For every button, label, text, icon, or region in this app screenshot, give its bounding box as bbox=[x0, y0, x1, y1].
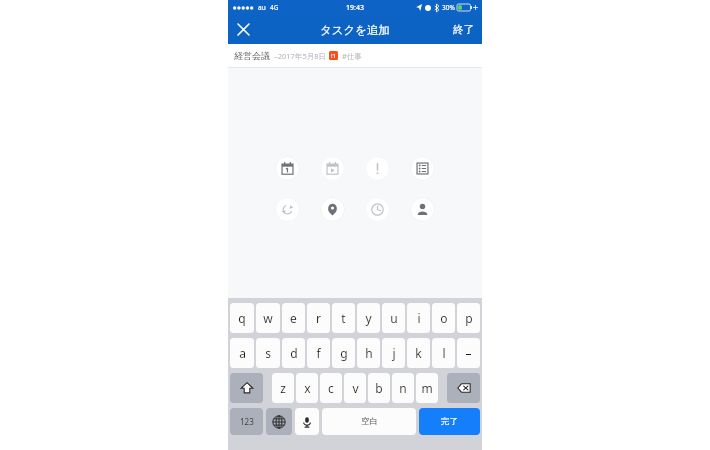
staticText: 123 bbox=[240, 416, 254, 427]
staticText: 30% bbox=[442, 3, 455, 12]
button[interactable]: j bbox=[382, 338, 405, 368]
staticText: 4G bbox=[270, 3, 279, 12]
button[interactable]: c bbox=[320, 373, 342, 403]
staticText: r bbox=[316, 310, 321, 326]
button[interactable]: 経営会議 bbox=[228, 44, 482, 67]
staticText: 完了 bbox=[441, 416, 458, 427]
button[interactable]: Repeat bbox=[275, 197, 300, 222]
button[interactable]: 123 bbox=[230, 408, 263, 435]
button[interactable]: Person bbox=[410, 197, 435, 222]
button[interactable]: f bbox=[307, 338, 330, 368]
staticText: e bbox=[290, 310, 297, 326]
staticText: c bbox=[328, 380, 334, 396]
staticText: –2017年5月8日 bbox=[274, 51, 326, 61]
button[interactable]: 終了 bbox=[445, 15, 482, 44]
button[interactable]: Calendar repeat bbox=[320, 156, 345, 181]
staticText: m bbox=[421, 380, 433, 396]
staticText: b bbox=[375, 380, 383, 396]
button[interactable]: Time bbox=[365, 197, 390, 222]
button[interactable]: i bbox=[407, 303, 430, 333]
button[interactable]: Backspace bbox=[447, 373, 480, 403]
button[interactable]: v bbox=[344, 373, 366, 403]
button[interactable]: Switch keyboard bbox=[266, 408, 292, 435]
staticText: g bbox=[340, 345, 348, 361]
button[interactable]: n bbox=[392, 373, 414, 403]
staticText: k bbox=[415, 345, 422, 361]
button[interactable]: q bbox=[230, 303, 254, 333]
staticText: 空白 bbox=[361, 416, 378, 427]
button[interactable]: u bbox=[382, 303, 405, 333]
button[interactable]: p bbox=[457, 303, 480, 333]
staticText: au bbox=[258, 3, 266, 12]
staticText: v bbox=[352, 380, 359, 396]
button[interactable]: Location bbox=[320, 197, 345, 222]
button[interactable]: d bbox=[282, 338, 305, 368]
staticText: t bbox=[341, 310, 346, 326]
button[interactable]: – bbox=[457, 338, 480, 368]
staticText: y bbox=[365, 310, 372, 326]
button[interactable]: w bbox=[256, 303, 280, 333]
button[interactable]: Voice input bbox=[295, 408, 319, 435]
staticText: n bbox=[399, 380, 407, 396]
button[interactable]: e bbox=[282, 303, 305, 333]
button[interactable]: h bbox=[357, 338, 380, 368]
staticText: – bbox=[465, 345, 472, 361]
button[interactable]: r bbox=[307, 303, 330, 333]
button[interactable]: Close bbox=[228, 15, 258, 44]
staticText: f bbox=[316, 345, 321, 361]
staticText: o bbox=[440, 310, 448, 326]
staticText: 19:43 bbox=[346, 3, 364, 13]
staticText: s bbox=[265, 345, 271, 361]
staticText: #仕事 bbox=[342, 51, 362, 61]
button[interactable]: Shift bbox=[230, 373, 263, 403]
button[interactable]: s bbox=[256, 338, 280, 368]
button[interactable]: y bbox=[357, 303, 380, 333]
staticText: z bbox=[280, 380, 286, 396]
staticText: 終了 bbox=[453, 23, 474, 36]
button[interactable]: x bbox=[296, 373, 318, 403]
staticText: d bbox=[290, 345, 298, 361]
staticText: x bbox=[304, 380, 311, 396]
staticText: i bbox=[417, 310, 421, 326]
button[interactable]: Priority bbox=[365, 156, 390, 181]
button[interactable]: l bbox=[432, 338, 455, 368]
staticText: w bbox=[263, 310, 273, 326]
button[interactable]: Calendar date bbox=[275, 156, 300, 181]
staticText: p bbox=[465, 310, 473, 326]
button[interactable]: o bbox=[432, 303, 455, 333]
staticText: j bbox=[392, 345, 396, 361]
button[interactable]: 空白 bbox=[322, 408, 416, 435]
button[interactable]: a bbox=[230, 338, 254, 368]
staticText: 経営会議 bbox=[234, 50, 270, 61]
staticText: q bbox=[238, 310, 246, 326]
staticText: a bbox=[239, 345, 246, 361]
staticText: タスクを追加 bbox=[320, 23, 391, 37]
button[interactable]: 完了 bbox=[419, 408, 480, 435]
button[interactable]: k bbox=[407, 338, 430, 368]
staticText: l bbox=[442, 345, 446, 361]
button[interactable]: t bbox=[332, 303, 355, 333]
button[interactable]: List bbox=[410, 156, 435, 181]
staticText: h bbox=[365, 345, 373, 361]
button[interactable]: g bbox=[332, 338, 355, 368]
staticText: !1 bbox=[331, 52, 337, 60]
button[interactable]: b bbox=[368, 373, 390, 403]
staticText: u bbox=[390, 310, 398, 326]
button[interactable]: m bbox=[416, 373, 438, 403]
button[interactable]: z bbox=[272, 373, 294, 403]
